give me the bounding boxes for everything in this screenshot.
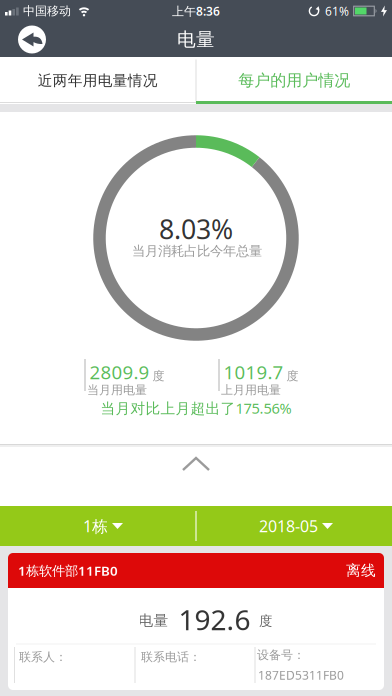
staticText: 上午8:36 xyxy=(172,3,220,19)
button[interactable]: 1栋 xyxy=(13,506,193,546)
staticText: 当月用电量 xyxy=(87,383,147,397)
staticText: 联系电话： xyxy=(141,650,201,664)
staticText: 当月对比上月超出了175.56% xyxy=(100,398,291,418)
staticText: 中国移动 xyxy=(23,4,71,18)
staticText: 近两年用电量情况 xyxy=(38,71,158,89)
staticText: 8.03% xyxy=(159,211,233,247)
button[interactable]: 返回 xyxy=(0,25,46,53)
staticText: 电量 xyxy=(138,611,168,629)
staticText: 2809.9 xyxy=(89,360,149,384)
staticText: 1栋软件部11FB0 xyxy=(18,562,118,579)
staticText: 度 xyxy=(152,369,164,383)
staticText: 度 xyxy=(259,613,272,629)
staticText: 离线 xyxy=(346,561,376,579)
staticText: 187ED5311FB0 xyxy=(258,667,344,683)
staticText: 1019.7 xyxy=(223,360,283,384)
staticText: 电量 xyxy=(177,28,215,51)
staticText: 2018-05 xyxy=(259,515,318,537)
staticText: 当月消耗占比今年总量 xyxy=(132,243,262,259)
button[interactable]: 2018-05 xyxy=(206,506,386,546)
staticText: 度 xyxy=(286,369,298,383)
button[interactable]: 1栋软件部11FB0 xyxy=(8,553,384,588)
staticText: 每户的用户情况 xyxy=(238,71,350,90)
staticText: 设备号： xyxy=(257,648,305,662)
staticText: 联系人： xyxy=(19,650,67,664)
button[interactable]: 每户的用户情况 xyxy=(196,57,392,104)
staticText: 192.6 xyxy=(178,601,250,638)
staticText: 1栋 xyxy=(83,515,108,537)
staticText: 61% xyxy=(325,3,349,19)
button[interactable]: 近两年用电量情况 xyxy=(0,57,195,104)
button[interactable]: 收起 xyxy=(0,447,392,506)
staticText: 上月用电量 xyxy=(221,383,281,397)
